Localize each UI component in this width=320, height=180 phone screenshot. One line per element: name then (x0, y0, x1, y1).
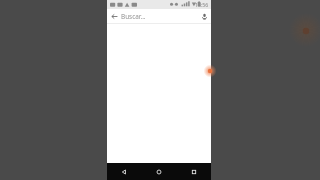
button[interactable]: Buscar... (121, 9, 197, 23)
button[interactable]: Voice search (197, 9, 211, 23)
staticText: 13:56 (195, 1, 209, 8)
staticText: Buscar... (121, 12, 146, 21)
button[interactable]: Back (107, 163, 141, 180)
button[interactable]: Recent apps (176, 163, 211, 180)
button[interactable]: Home (141, 163, 176, 180)
button[interactable]: Back (107, 9, 121, 23)
